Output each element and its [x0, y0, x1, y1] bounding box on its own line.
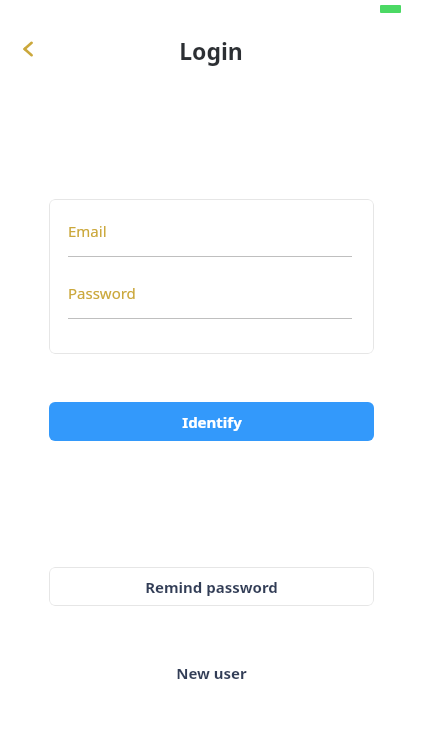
- staticText: New user: [176, 663, 247, 683]
- button[interactable]: Identify: [49, 402, 374, 441]
- staticText: Identify: [182, 412, 242, 432]
- button[interactable]: Email: [49, 199, 374, 259]
- staticText: Login: [0, 35, 422, 66]
- button[interactable]: Password: [49, 261, 374, 323]
- button[interactable]: Remind password: [49, 567, 374, 606]
- staticText: Password: [68, 283, 136, 303]
- staticText: Remind password: [145, 577, 278, 597]
- button[interactable]: Back: [8, 28, 50, 70]
- staticText: Email: [68, 221, 107, 241]
- button[interactable]: New user: [49, 656, 374, 690]
